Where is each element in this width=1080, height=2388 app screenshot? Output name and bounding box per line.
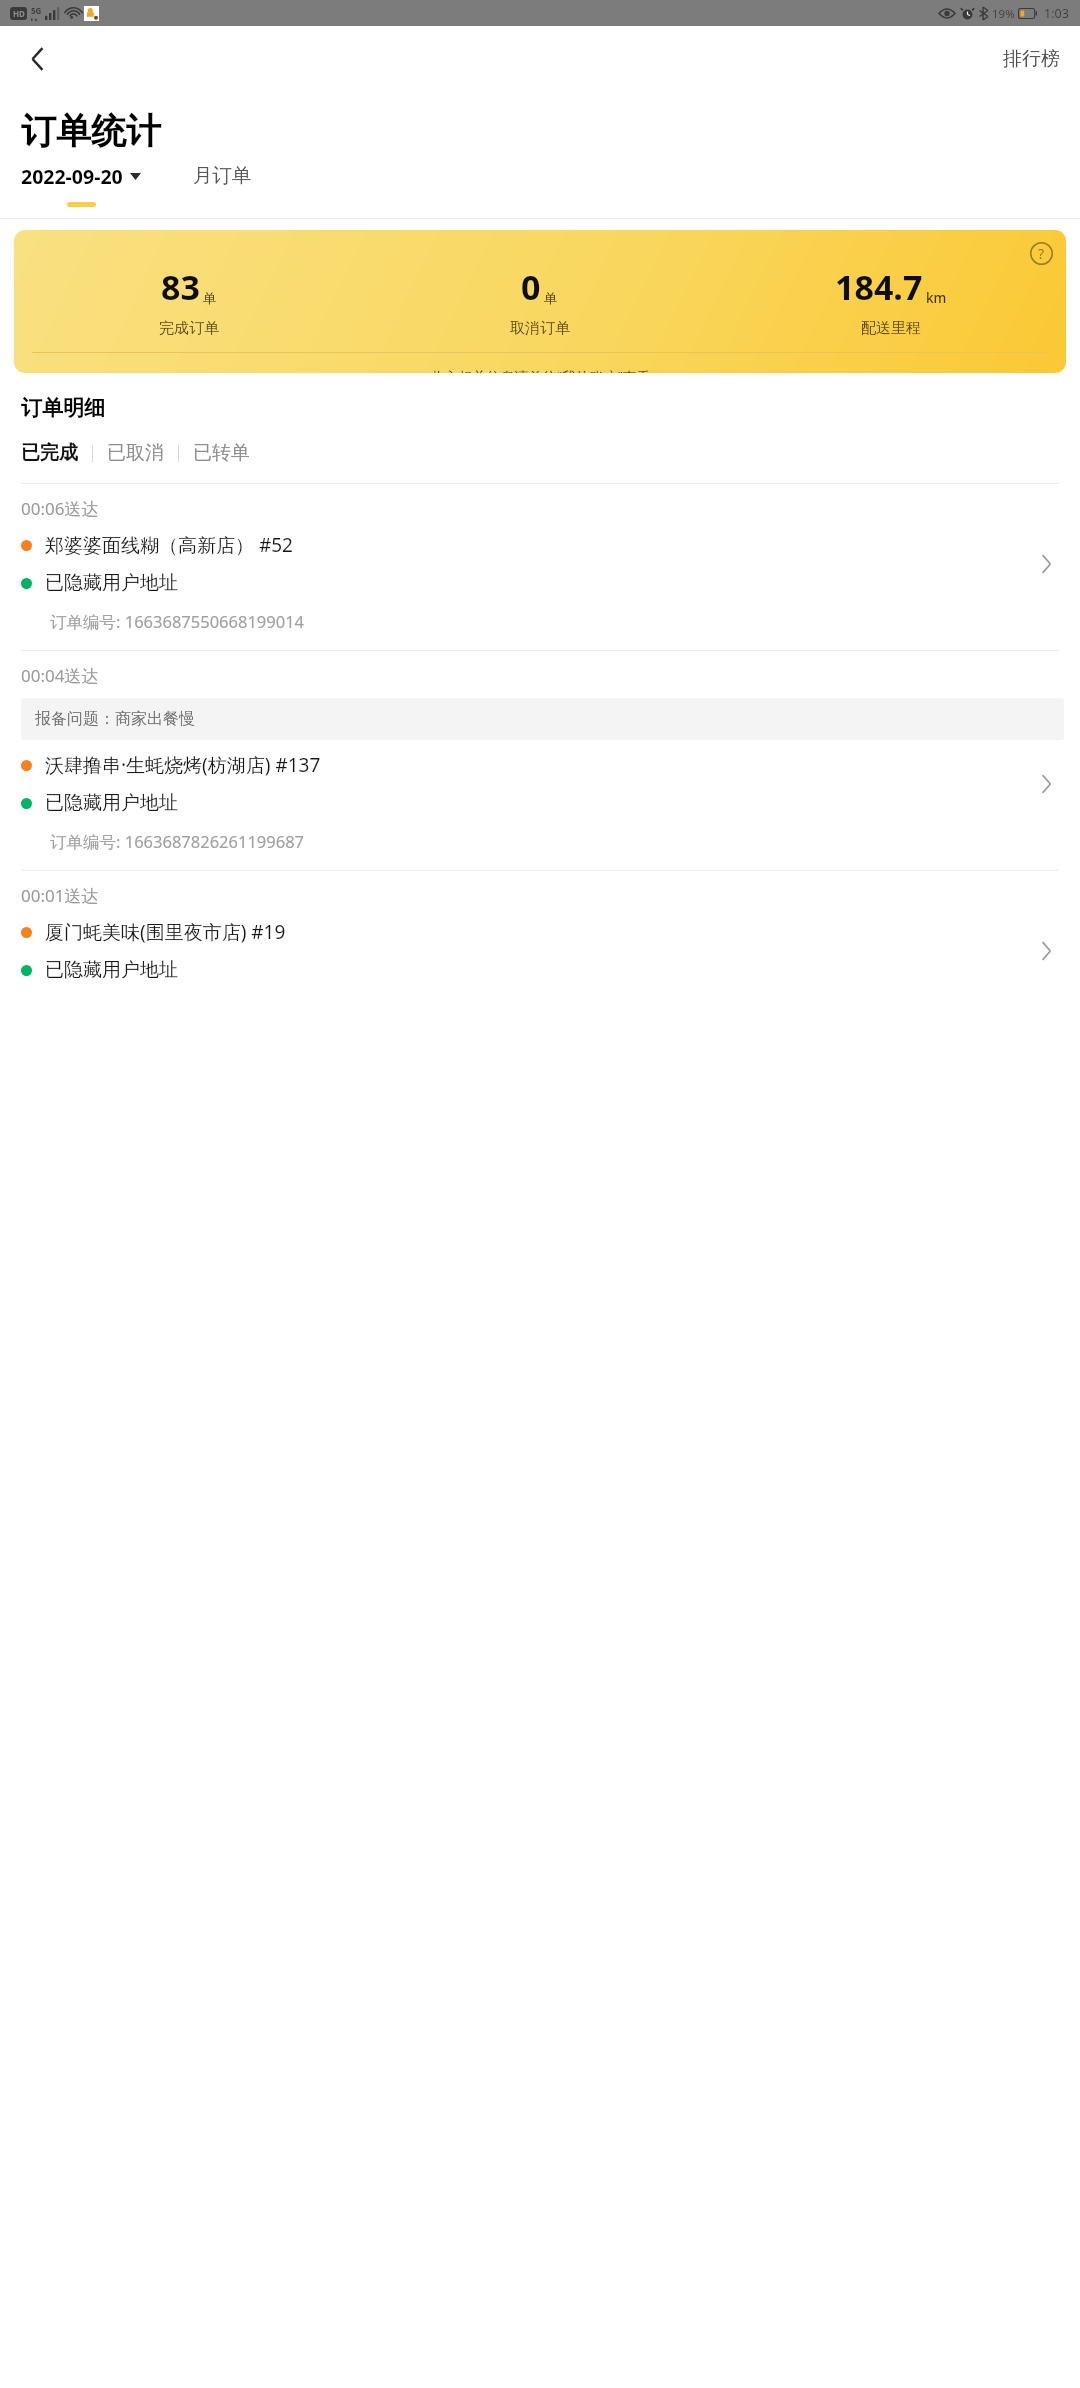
staticText: 排行榜 <box>1003 47 1060 71</box>
staticText: 报备问题：商家出餐慢 <box>35 709 195 729</box>
staticText: 取消订单 <box>510 319 570 338</box>
button[interactable]: 00:06送达 <box>0 484 1080 650</box>
button[interactable]: 已转单 <box>193 441 250 465</box>
staticText: 沃肆撸串·生蚝烧烤(枋湖店) #137 <box>45 752 321 778</box>
staticText: 完成订单 <box>159 319 219 338</box>
staticText: 83 <box>161 264 200 310</box>
button[interactable]: Back <box>14 36 60 82</box>
button[interactable]: 月订单 <box>193 163 252 188</box>
button[interactable]: Help <box>14 230 1066 373</box>
staticText: 已取消 <box>107 441 164 465</box>
staticText: 郑婆婆面线糊（高新店） #52 <box>45 532 293 558</box>
other: Order details <box>1028 933 1064 969</box>
staticText: 00:06送达 <box>21 497 99 520</box>
button[interactable]: 排行榜 <box>983 37 1080 81</box>
staticText: 已隐藏用户地址 <box>45 571 178 595</box>
staticText: 厦门蚝美味(围里夜市店) #19 <box>45 919 286 945</box>
staticText: HD <box>13 8 25 19</box>
staticText: km <box>926 289 947 307</box>
other: Order details <box>1028 546 1064 582</box>
staticText: 已隐藏用户地址 <box>45 958 178 982</box>
staticText: ? <box>1038 244 1045 263</box>
button[interactable]: 已完成 <box>21 441 78 465</box>
staticText: 00:01送达 <box>21 884 99 907</box>
staticText: 订单统计 <box>21 109 161 153</box>
staticText: 0 <box>521 264 541 310</box>
staticText: 收入相关信息请前往“我的账户”查看 <box>430 367 651 373</box>
staticText: 订单明细 <box>21 395 105 421</box>
button[interactable]: 00:01送达 <box>0 871 1080 982</box>
staticText: 00:04送达 <box>21 664 99 687</box>
staticText: 订单编号: 1663687826261199687 <box>50 830 305 853</box>
staticText: 订单编号: 1663687550668199014 <box>50 610 305 633</box>
staticText: 5G <box>31 5 42 16</box>
staticText: 1:03 <box>1044 5 1069 22</box>
staticText: 已隐藏用户地址 <box>45 791 178 815</box>
staticText: 已转单 <box>193 441 250 465</box>
staticText: 单 <box>203 290 217 307</box>
staticText: 月订单 <box>193 163 252 188</box>
staticText: 184.7 <box>835 264 923 310</box>
staticText: 配送里程 <box>861 319 921 338</box>
button[interactable]: Help <box>1026 238 1056 268</box>
staticText: 19% <box>992 6 1015 22</box>
staticText: 2022-09-20 <box>21 163 123 190</box>
staticText: 已完成 <box>21 441 78 465</box>
button[interactable]: 00:04送达 <box>0 651 1080 870</box>
staticText: 单 <box>544 290 558 307</box>
other: Order details <box>1028 766 1064 802</box>
button[interactable]: 已取消 <box>107 441 164 465</box>
button[interactable]: 2022-09-20 <box>21 163 141 207</box>
